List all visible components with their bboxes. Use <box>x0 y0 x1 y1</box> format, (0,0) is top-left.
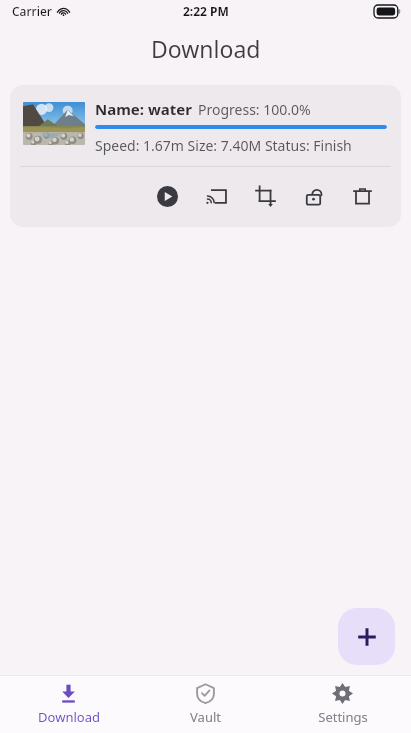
staticText: Progress: 100.0% <box>198 100 311 119</box>
staticText: Settings <box>318 708 368 726</box>
button[interactable]: Unlock <box>296 179 330 213</box>
staticText: Vault <box>190 708 221 726</box>
button[interactable]: Cast <box>199 179 233 213</box>
button[interactable]: Crop <box>248 179 282 213</box>
button[interactable]: Add download <box>338 608 395 665</box>
staticText: 2:22 PM <box>183 3 229 19</box>
staticText: Download <box>151 33 261 64</box>
button[interactable]: Delete <box>345 179 379 213</box>
staticText: Download <box>38 708 100 726</box>
button[interactable]: Vault <box>137 676 274 733</box>
button[interactable]: Name: water <box>10 85 401 227</box>
button[interactable]: Play <box>150 179 184 213</box>
staticText: Speed: 1.67m Size: 7.40M Status: Finish <box>95 136 352 155</box>
button[interactable]: Download <box>0 676 137 733</box>
button[interactable]: Settings <box>274 676 411 733</box>
staticText: Name: water <box>95 99 192 119</box>
staticText: Carrier <box>12 3 52 19</box>
